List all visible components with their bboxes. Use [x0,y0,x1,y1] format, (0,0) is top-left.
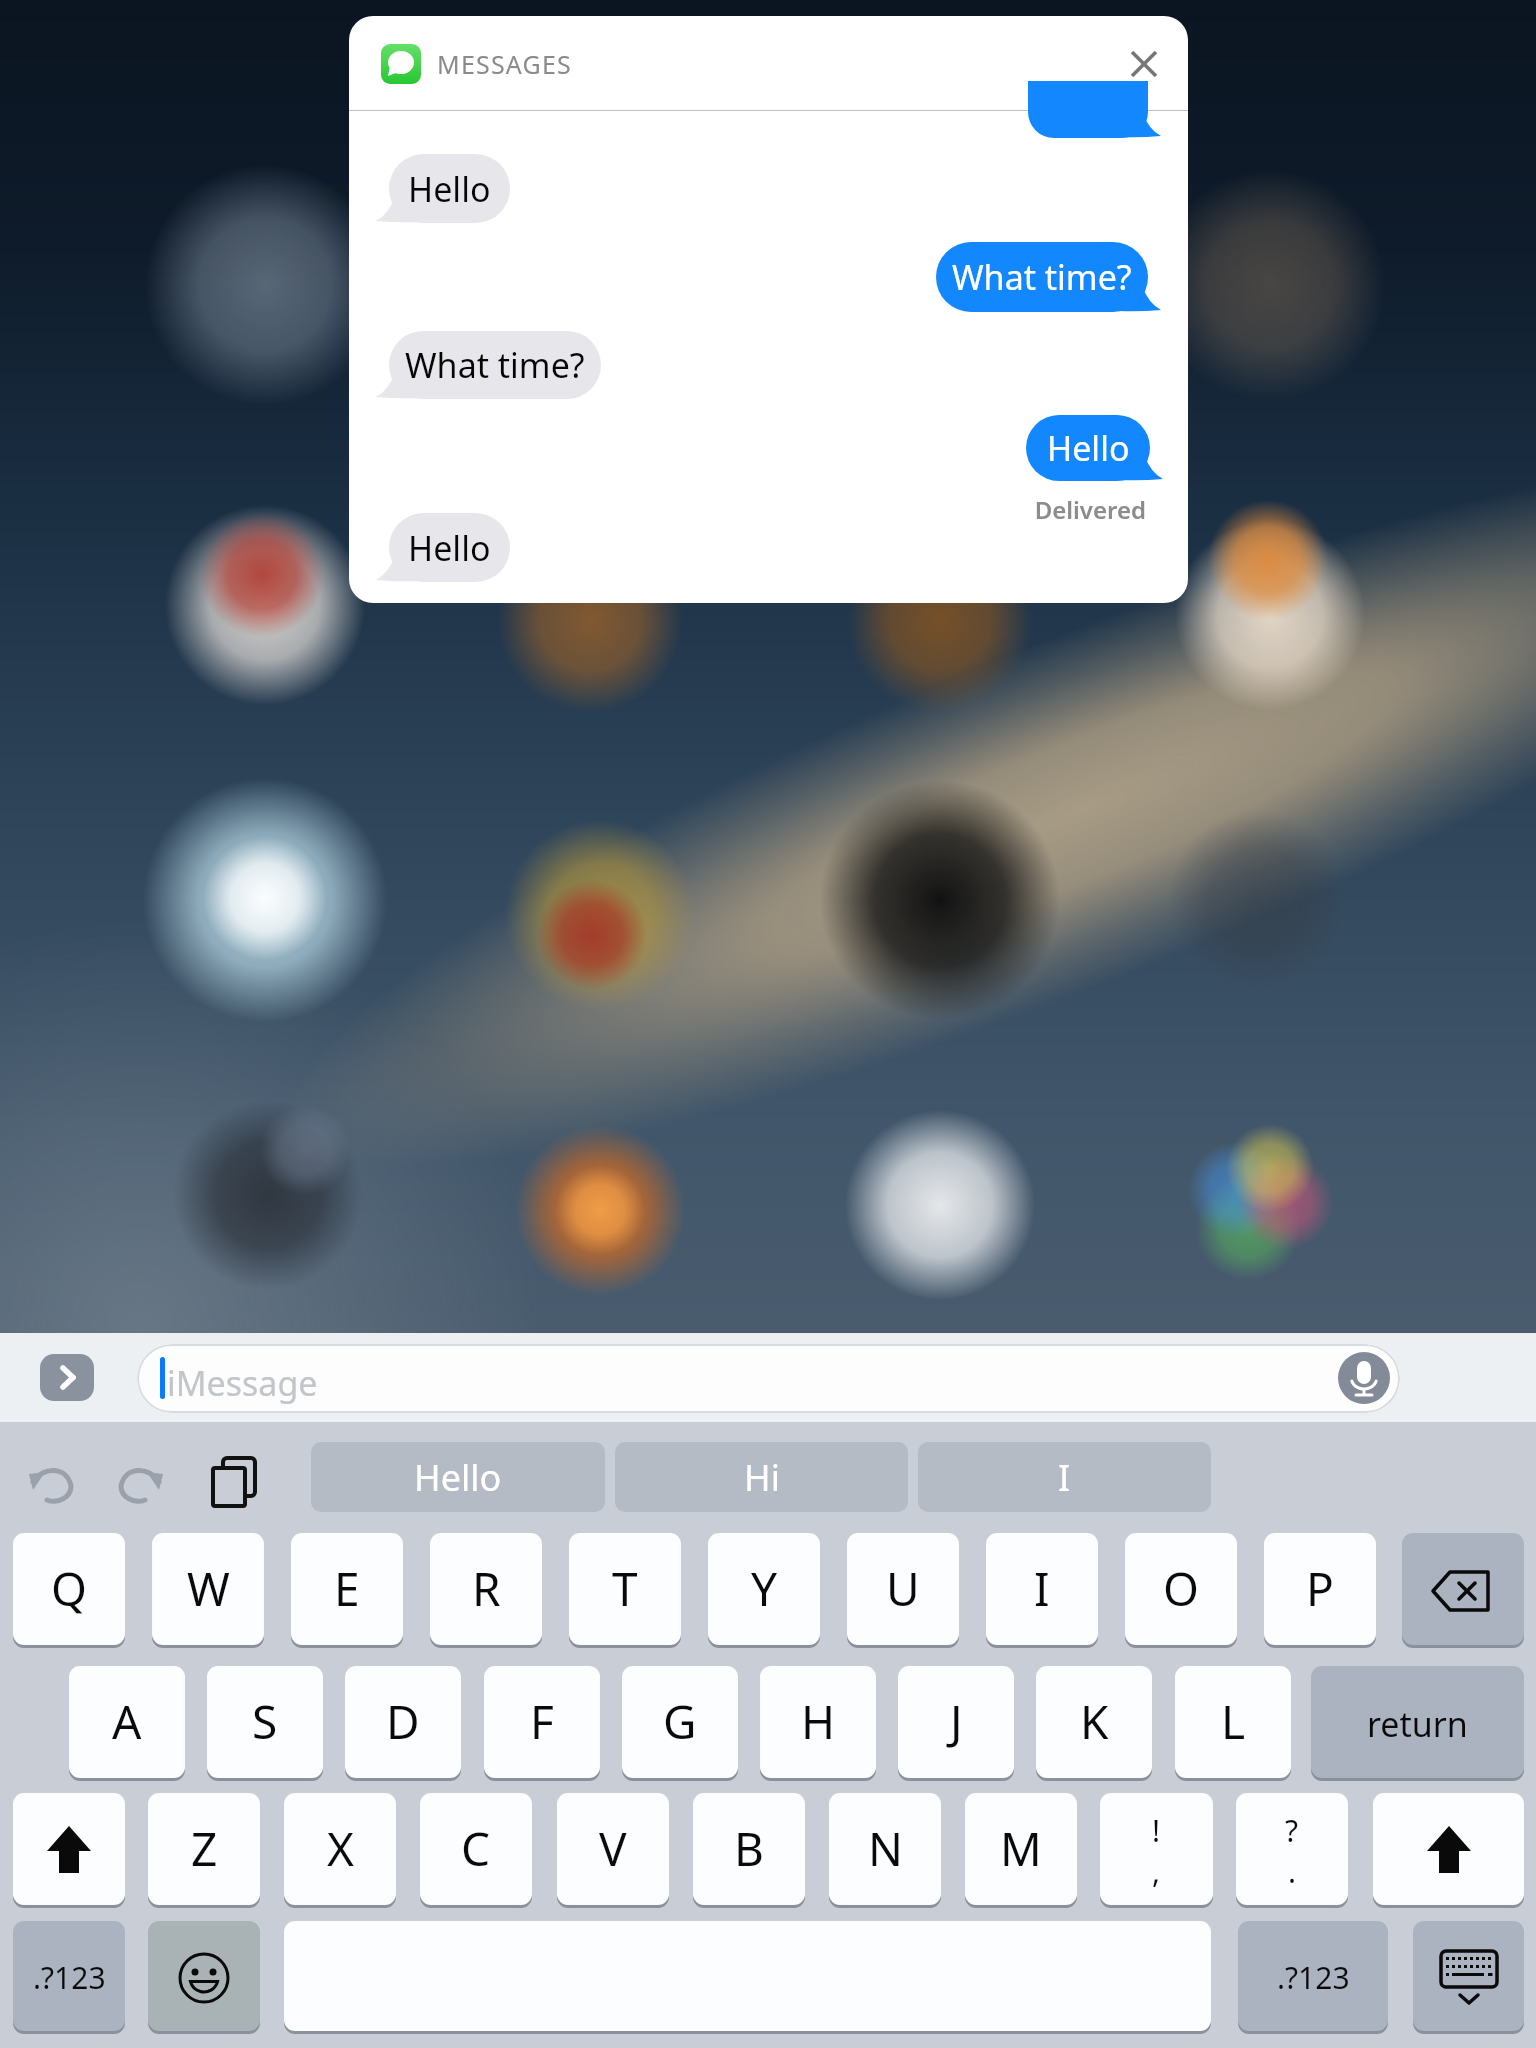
staticText: return [1367,1701,1468,1747]
button[interactable]: E [291,1533,403,1648]
staticText: I [1058,1453,1071,1502]
button[interactable]: .?123 [13,1921,125,2034]
button[interactable]: H [760,1666,876,1781]
staticText: Hello [414,1453,502,1502]
staticText: Y [751,1557,778,1620]
staticText: I [1034,1557,1050,1620]
button[interactable]: A [69,1666,185,1781]
staticText: L [1221,1690,1246,1753]
button[interactable]: O [1125,1533,1237,1648]
staticText: N [868,1817,903,1880]
button[interactable]: V [557,1793,669,1908]
staticText: Hi [744,1453,780,1502]
staticText: Z [191,1817,218,1880]
staticText: .?123 [1277,1957,1350,1998]
button[interactable] [40,1354,94,1401]
button[interactable]: iMessage [137,1344,1400,1413]
button[interactable]: X [284,1793,396,1908]
staticText: K [1080,1690,1109,1753]
staticText: D [386,1690,420,1753]
staticText: . [1288,1851,1297,1892]
button[interactable]: Z [148,1793,260,1908]
staticText: iMessage [167,1360,318,1406]
button[interactable]: G [622,1666,738,1781]
staticText: Delivered [1027,493,1146,526]
button[interactable]: return [1311,1666,1524,1781]
staticText: U [886,1557,920,1620]
button[interactable] [27,1464,73,1504]
staticText: Hello [408,166,491,212]
staticText: O [1163,1557,1199,1620]
button[interactable]: B [693,1793,805,1908]
button[interactable]: D [345,1666,461,1781]
staticText: What time? [952,254,1132,300]
staticText: What time? [405,342,585,388]
staticText: A [112,1690,142,1753]
button[interactable]: ? [1236,1793,1348,1908]
button[interactable]: ! [1100,1793,1213,1908]
staticText: E [334,1557,360,1620]
button[interactable] [284,1921,1211,2034]
staticText: Hello [408,525,491,571]
staticText: MESSAGES [437,47,572,81]
button[interactable]: U [847,1533,959,1648]
staticText: Q [51,1557,87,1620]
button[interactable]: J [898,1666,1014,1781]
staticText: T [612,1557,638,1620]
staticText: ? [1285,1810,1299,1851]
staticText: C [461,1817,491,1880]
staticText: X [327,1817,354,1880]
staticText: .?123 [33,1957,106,1998]
staticText: H [801,1690,836,1753]
button[interactable]: C [420,1793,532,1908]
button[interactable]: Q [13,1533,125,1648]
button[interactable] [119,1464,165,1504]
button[interactable]: I [918,1442,1211,1512]
button[interactable]: F [484,1666,600,1781]
button[interactable] [148,1921,260,2034]
staticText: ! [1152,1810,1161,1851]
staticText: S [252,1690,278,1753]
button[interactable]: K [1036,1666,1152,1781]
button[interactable] [1338,1352,1390,1404]
staticText: Hello [1047,425,1130,471]
staticText: J [950,1690,963,1753]
button[interactable] [1373,1793,1524,1908]
staticText: F [530,1690,554,1753]
button[interactable]: W [152,1533,264,1648]
button[interactable]: I [986,1533,1098,1648]
staticText: , [1152,1851,1161,1892]
button[interactable]: S [207,1666,323,1781]
button[interactable]: .?123 [1238,1921,1388,2034]
button[interactable]: T [569,1533,681,1648]
button[interactable]: Hello [311,1442,605,1512]
button[interactable]: Hi [615,1442,908,1512]
button[interactable] [1120,40,1168,88]
button[interactable]: M [965,1793,1077,1908]
button[interactable] [211,1458,259,1508]
button[interactable] [13,1793,125,1908]
staticText: B [734,1817,764,1880]
staticText: W [187,1557,230,1620]
button[interactable]: L [1175,1666,1291,1781]
staticText: V [599,1817,627,1880]
button[interactable]: R [430,1533,542,1648]
button[interactable] [1413,1921,1524,2034]
button[interactable]: N [829,1793,941,1908]
staticText: M [1000,1817,1042,1880]
button[interactable]: Y [708,1533,820,1648]
button[interactable] [1402,1533,1524,1648]
button[interactable]: P [1264,1533,1376,1648]
staticText: G [663,1690,697,1753]
staticText: R [472,1557,501,1620]
staticText: P [1306,1557,1334,1620]
